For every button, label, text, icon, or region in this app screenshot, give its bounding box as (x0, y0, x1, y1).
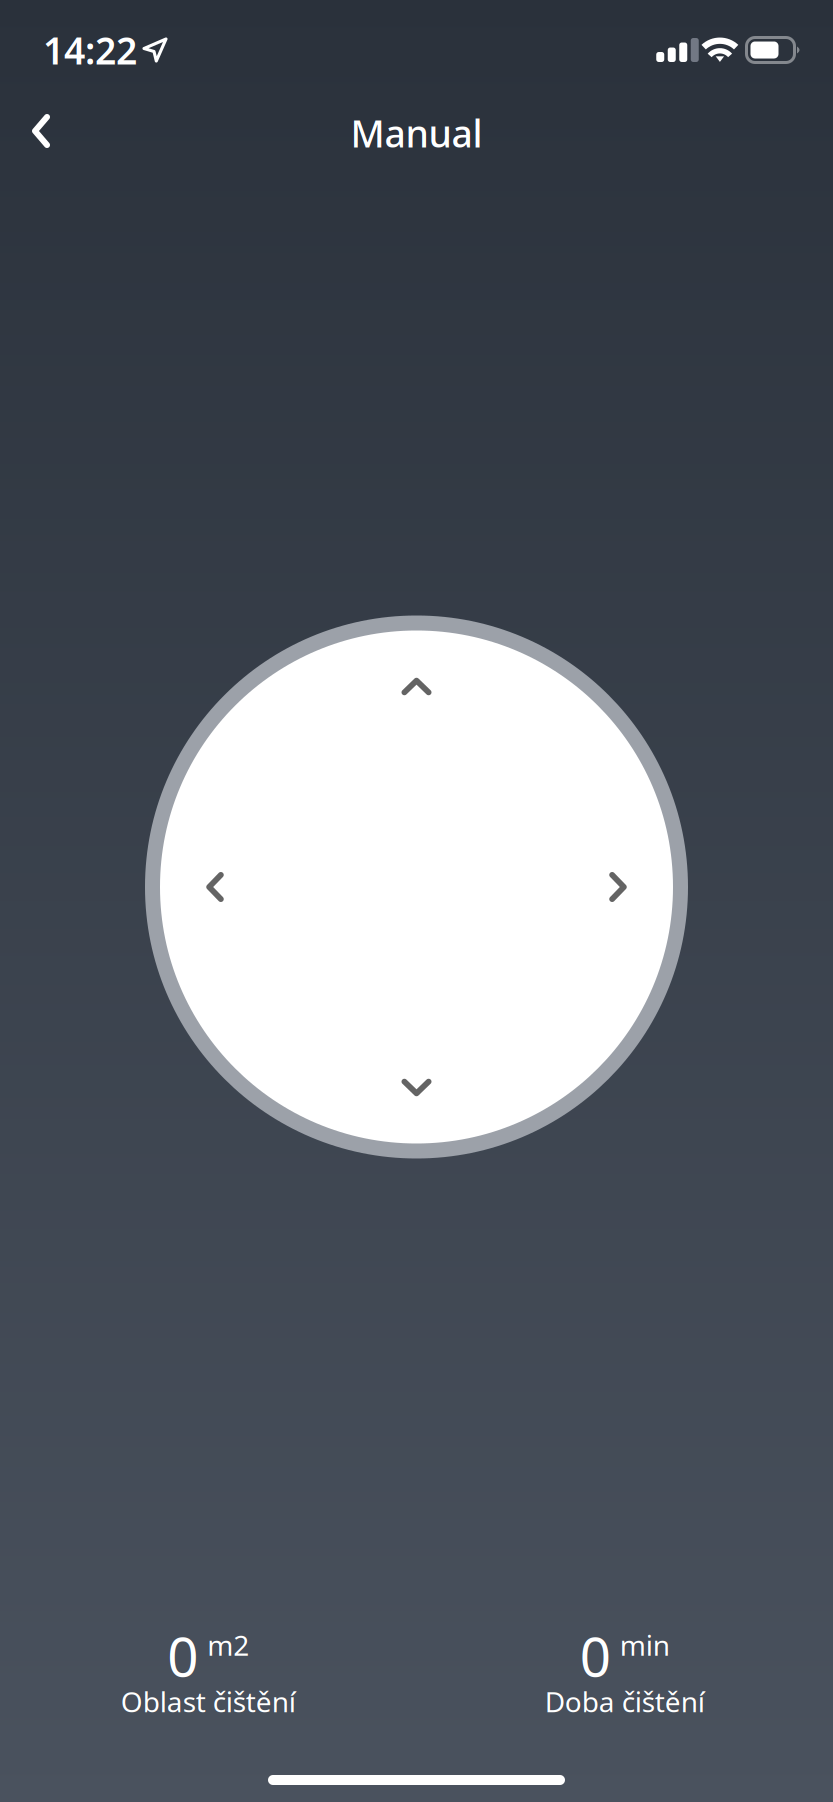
button[interactable]: Drive backward (361, 1032, 471, 1142)
staticText: Manual (350, 108, 482, 158)
staticText: 14:22 (43, 25, 137, 75)
staticText: Oblast čištění (121, 1683, 296, 1720)
staticText: m2 (207, 1626, 249, 1663)
staticText: 0 (167, 1619, 198, 1692)
button[interactable]: Back (8, 98, 74, 164)
button[interactable]: Turn left (160, 832, 270, 942)
staticText: min (620, 1626, 670, 1663)
button[interactable]: Drive forward (361, 631, 471, 741)
staticText: 0 (580, 1619, 611, 1692)
staticText: Doba čištění (545, 1683, 705, 1720)
button[interactable]: Turn right (563, 832, 673, 942)
